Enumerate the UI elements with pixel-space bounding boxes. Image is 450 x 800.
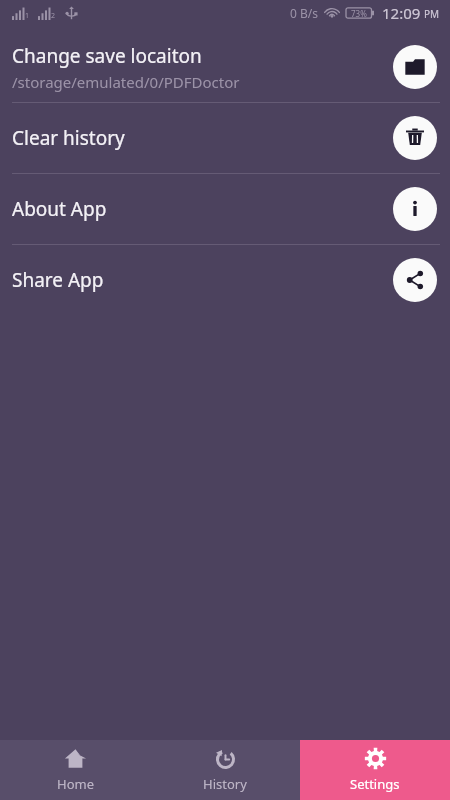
staticText: About App	[12, 196, 107, 222]
staticText: 12:09	[382, 3, 421, 23]
staticText: 73%	[351, 8, 367, 19]
button[interactable]: History	[150, 740, 300, 800]
button[interactable]: Change save locaiton	[0, 32, 450, 102]
button[interactable]: Change save location	[393, 45, 437, 89]
staticText: Settings	[350, 775, 400, 793]
button[interactable]: Clear history	[0, 103, 450, 173]
staticText: Share App	[12, 267, 104, 293]
staticText: 2	[51, 11, 56, 21]
staticText: 1	[25, 11, 30, 21]
staticText: Home	[57, 775, 94, 793]
button[interactable]: Clear history	[393, 116, 437, 160]
staticText: PM	[424, 7, 440, 21]
button[interactable]: About App	[393, 187, 437, 231]
button[interactable]: Home	[0, 740, 150, 800]
staticText: History	[203, 775, 247, 793]
button[interactable]: Share App	[0, 245, 450, 315]
button[interactable]: About App	[0, 174, 450, 244]
button[interactable]: Share App	[393, 258, 437, 302]
staticText: Clear history	[12, 125, 125, 151]
staticText: Change save locaiton	[12, 43, 202, 69]
staticText: 0 B/s	[290, 5, 318, 21]
button[interactable]: Settings	[300, 740, 450, 800]
staticText: /storage/emulated/0/PDFDoctor	[12, 72, 240, 92]
